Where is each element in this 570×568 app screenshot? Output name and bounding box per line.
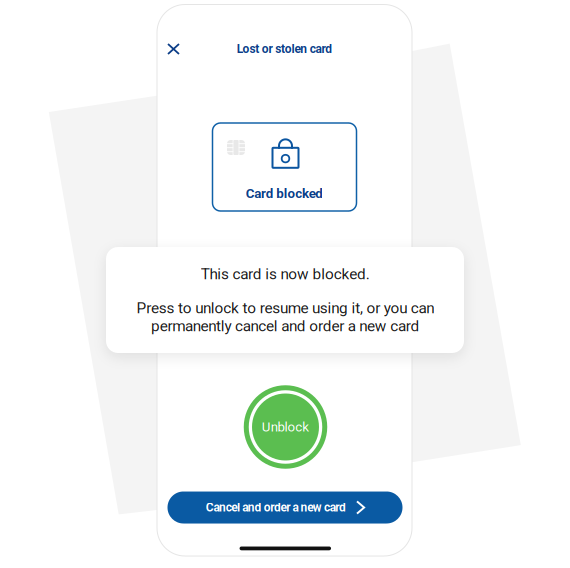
staticText: Lost or stolen card [237,42,332,56]
button[interactable]: Cancel and order a new card [167,491,402,523]
staticText: Card blocked [246,186,323,201]
staticText: Cancel and order a new card [206,500,346,515]
staticText: Press to unlock to resume using it, or y… [136,299,434,335]
button[interactable]: Unblock [243,385,327,469]
button[interactable]: Close [159,35,188,63]
staticText: This card is now blocked. [200,265,369,283]
staticText: Unblock [262,419,309,435]
